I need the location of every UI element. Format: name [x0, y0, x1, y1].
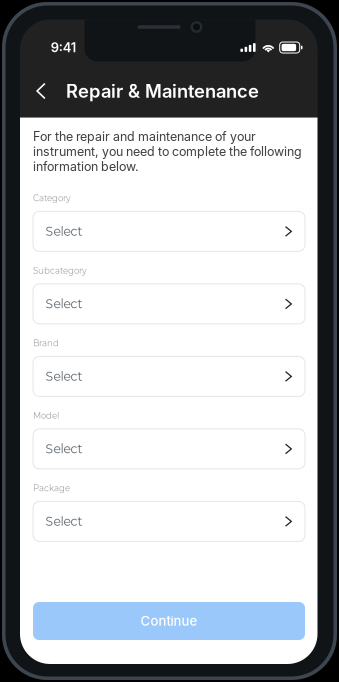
button[interactable]: Continue: [33, 602, 305, 640]
staticText: For the repair and maintenance of your i…: [33, 129, 302, 174]
staticText: Subcategory: [33, 265, 87, 276]
staticText: Package: [33, 483, 70, 493]
button[interactable]: Select: [33, 429, 305, 469]
staticText: Select: [45, 514, 82, 529]
staticText: Model: [33, 410, 59, 421]
staticText: Repair & Maintenance: [66, 80, 259, 102]
staticText: Select: [45, 224, 82, 239]
staticText: Select: [45, 369, 82, 384]
button[interactable]: Select: [33, 356, 305, 396]
button[interactable]: Select: [33, 501, 305, 541]
staticText: Select: [45, 441, 82, 456]
staticText: 9:41: [51, 40, 76, 55]
staticText: Brand: [33, 338, 59, 348]
staticText: Continue: [140, 613, 197, 629]
button[interactable]: Select: [33, 211, 305, 251]
button[interactable]: Select: [33, 284, 305, 324]
button[interactable]: Back: [25, 75, 57, 107]
staticText: Category: [33, 193, 71, 203]
staticText: Select: [45, 296, 82, 311]
